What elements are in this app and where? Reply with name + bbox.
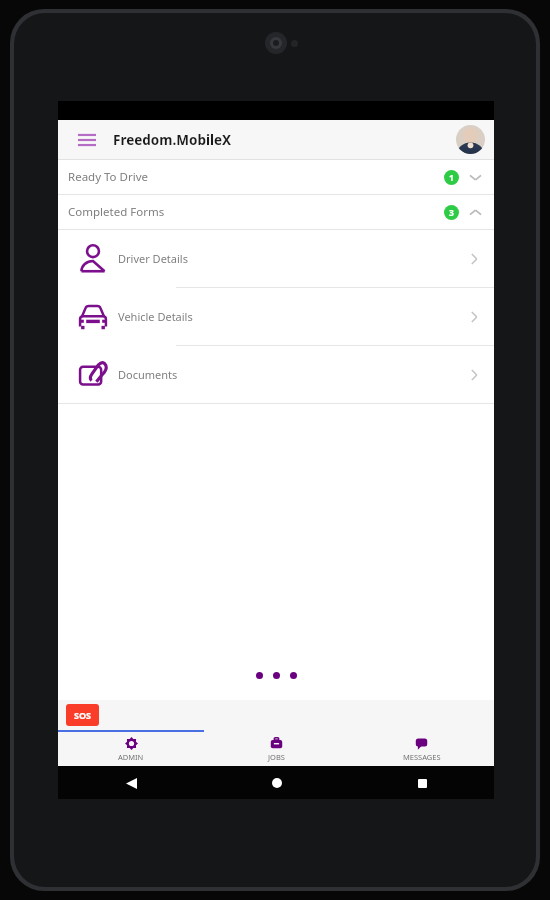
button[interactable]: ADMIN bbox=[58, 732, 204, 766]
button[interactable]: Driver Details bbox=[58, 230, 494, 287]
button[interactable]: Home bbox=[265, 771, 289, 795]
button[interactable]: Ready To Drive bbox=[58, 160, 494, 194]
staticText: MESSAGES bbox=[403, 752, 441, 762]
button[interactable]: MESSAGES bbox=[349, 732, 494, 766]
staticText: Ready To Drive bbox=[68, 169, 444, 185]
button[interactable]: Recents bbox=[410, 771, 434, 795]
staticText: Completed Forms bbox=[68, 204, 444, 220]
button[interactable]: JOBS bbox=[204, 732, 349, 766]
staticText: ADMIN bbox=[118, 752, 144, 762]
button[interactable]: Vehicle Details bbox=[58, 288, 494, 345]
staticText: 3 bbox=[449, 207, 454, 219]
staticText: JOBS bbox=[268, 752, 285, 762]
button[interactable]: Back bbox=[119, 771, 143, 795]
button[interactable]: Completed Forms bbox=[58, 195, 494, 229]
staticText: Freedom.MobileX bbox=[113, 131, 232, 149]
staticText: Vehicle Details bbox=[118, 309, 466, 324]
staticText: SOS bbox=[74, 709, 92, 721]
staticText: 1 bbox=[449, 172, 454, 184]
button[interactable]: Menu bbox=[70, 123, 104, 157]
button[interactable]: Profile bbox=[456, 125, 485, 154]
button[interactable]: SOS bbox=[66, 704, 99, 726]
staticText: Driver Details bbox=[118, 251, 466, 266]
button[interactable]: Documents bbox=[58, 346, 494, 403]
staticText: Documents bbox=[118, 367, 466, 382]
